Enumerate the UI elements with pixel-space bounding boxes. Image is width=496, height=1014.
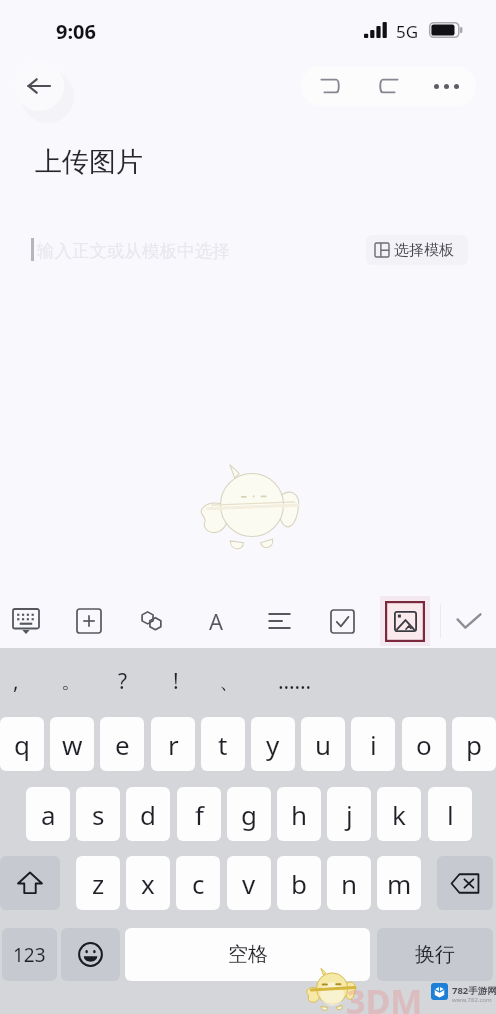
button[interactable]: c <box>176 856 220 910</box>
staticText: , <box>13 667 19 696</box>
staticText: j <box>346 797 353 832</box>
button[interactable]: u <box>301 717 345 771</box>
button[interactable] <box>0 856 60 910</box>
button[interactable]: x <box>126 856 170 910</box>
staticText: h <box>291 797 308 832</box>
button[interactable]: i <box>351 717 395 771</box>
staticText: a <box>41 797 56 832</box>
button[interactable]: Align <box>252 593 306 649</box>
staticText: 9:06 <box>56 18 96 45</box>
staticText: r <box>168 727 179 762</box>
staticText: 空格 <box>228 942 268 967</box>
button[interactable]: 。 <box>45 654 97 708</box>
staticText: 123 <box>13 942 46 968</box>
staticText: A <box>209 606 224 636</box>
staticText: 换行 <box>415 942 455 967</box>
staticText: p <box>466 727 482 762</box>
button[interactable]: ! <box>150 654 202 708</box>
button[interactable]: o <box>402 717 446 771</box>
staticText: c <box>192 866 205 901</box>
staticText: u <box>315 727 332 762</box>
staticText: m <box>387 866 412 901</box>
button[interactable]: g <box>227 787 271 841</box>
staticText: 3DM <box>346 978 423 1014</box>
button[interactable]: w <box>50 717 94 771</box>
staticText: 输入正文或从模板中选择 <box>37 240 230 262</box>
button[interactable]: 123 <box>2 928 57 981</box>
staticText: e <box>115 727 130 762</box>
staticText: y <box>266 727 280 762</box>
button[interactable]: s <box>76 787 120 841</box>
button[interactable]: Checklist <box>315 593 369 649</box>
staticText: www.782.com <box>452 996 492 1004</box>
staticText: 。 <box>61 668 82 694</box>
staticText: f <box>195 797 204 832</box>
button[interactable]: , <box>0 654 42 708</box>
button[interactable]: m <box>377 856 421 910</box>
button[interactable]: …… <box>269 654 321 708</box>
button[interactable]: e <box>100 717 144 771</box>
button[interactable]: n <box>327 856 371 910</box>
button[interactable]: t <box>201 717 245 771</box>
staticText: k <box>392 797 406 832</box>
staticText: 、 <box>219 668 240 694</box>
button[interactable]: 选择模板 <box>366 235 468 265</box>
button[interactable]: z <box>76 856 120 910</box>
staticText: v <box>242 866 256 901</box>
staticText: 上传图片 <box>35 145 143 179</box>
button[interactable]: Back <box>8 58 68 116</box>
button[interactable]: 空格 <box>125 928 370 981</box>
staticText: x <box>141 866 155 901</box>
staticText: z <box>92 866 105 901</box>
staticText: l <box>447 797 454 832</box>
staticText: g <box>241 797 257 832</box>
button[interactable]: y <box>251 717 295 771</box>
staticText: t <box>218 727 228 762</box>
button[interactable] <box>61 928 120 981</box>
button[interactable]: Text style <box>189 593 243 649</box>
staticText: 选择模板 <box>394 241 454 260</box>
staticText: q <box>14 727 30 762</box>
button[interactable]: Insert image <box>378 593 432 649</box>
button[interactable]: j <box>327 787 371 841</box>
staticText: ! <box>173 667 179 696</box>
button[interactable]: More options <box>417 66 476 106</box>
button[interactable]: a <box>26 787 70 841</box>
staticText: 5G <box>396 20 419 43</box>
staticText: w <box>62 727 83 762</box>
staticText: 782手游网 <box>452 984 496 997</box>
button[interactable]: b <box>277 856 321 910</box>
button[interactable]: v <box>227 856 271 910</box>
button[interactable]: Done <box>442 593 496 649</box>
button[interactable]: 、 <box>203 654 255 708</box>
staticText: d <box>140 797 156 832</box>
button[interactable]: ? <box>97 654 149 708</box>
button[interactable]: k <box>377 787 421 841</box>
staticText: i <box>370 727 377 762</box>
button[interactable]: Insert <box>62 593 116 649</box>
button[interactable]: Undo <box>301 66 359 106</box>
button[interactable]: p <box>452 717 496 771</box>
button[interactable]: Keyboard <box>0 593 53 649</box>
staticText: b <box>291 866 307 901</box>
staticText: …… <box>278 667 312 696</box>
button[interactable]: r <box>151 717 195 771</box>
button[interactable] <box>437 856 493 910</box>
button[interactable]: l <box>428 787 472 841</box>
button[interactable]: Link <box>125 593 179 649</box>
staticText: n <box>341 866 358 901</box>
button[interactable]: h <box>277 787 321 841</box>
staticText: s <box>92 797 105 832</box>
staticText: o <box>416 727 432 762</box>
button[interactable]: 换行 <box>377 928 493 981</box>
button[interactable]: d <box>126 787 170 841</box>
button[interactable]: q <box>0 717 44 771</box>
button[interactable]: f <box>177 787 221 841</box>
button[interactable]: Redo <box>359 66 417 106</box>
staticText: ? <box>118 667 128 696</box>
